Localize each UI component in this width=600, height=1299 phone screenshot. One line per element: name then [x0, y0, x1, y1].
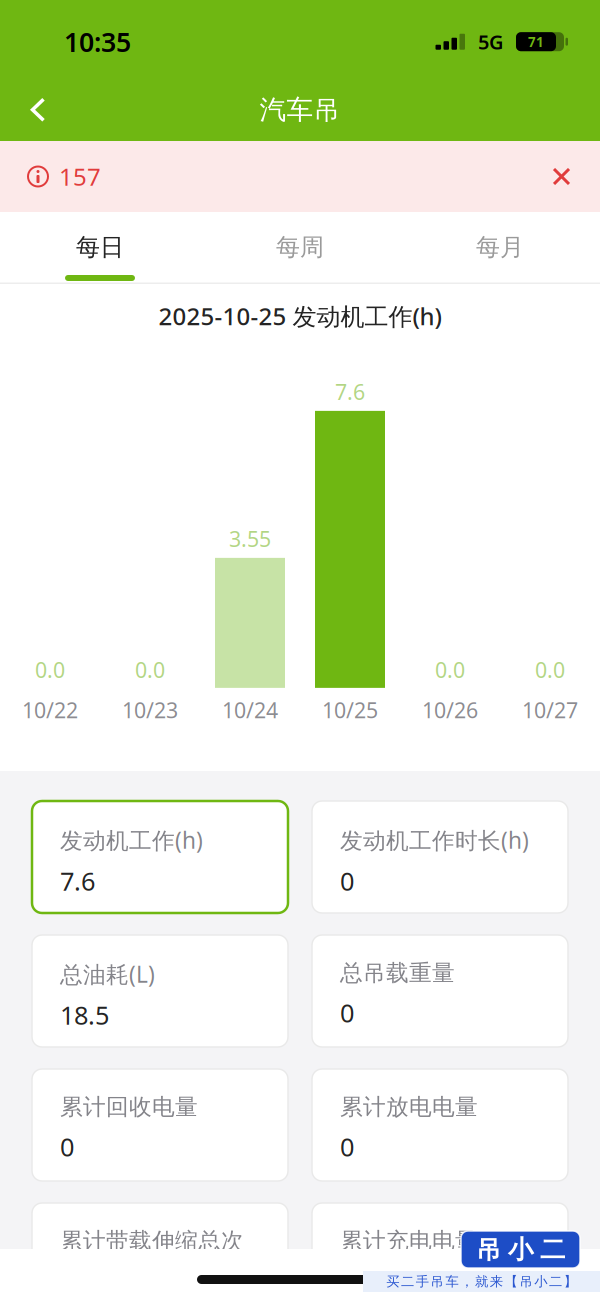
staticText: 0.0: [135, 655, 165, 684]
button[interactable]: 累计带载伸缩总次: [32, 1203, 288, 1299]
staticText: 10/24: [222, 696, 278, 724]
staticText: 0: [340, 864, 354, 898]
button[interactable]: Back: [31, 98, 45, 122]
staticText: 71: [528, 33, 544, 51]
staticText: 10:35: [64, 24, 131, 59]
staticText: 累计放电电量: [340, 1093, 478, 1121]
staticText: 10/27: [522, 696, 578, 724]
staticText: 0: [340, 1264, 354, 1297]
staticText: 发动机工作时长(h): [340, 825, 529, 855]
staticText: 吊小二: [476, 1234, 565, 1265]
staticText: 0.0: [435, 655, 465, 684]
staticText: 0.0: [35, 655, 65, 684]
staticText: 10/23: [122, 696, 178, 724]
staticText: 3.55: [229, 524, 271, 553]
button[interactable]: 发动机工作时长(h): [312, 801, 568, 913]
button[interactable]: 每日: [0, 212, 200, 282]
button[interactable]: 累计充电电量: [312, 1203, 568, 1299]
staticText: 累计充电电量: [340, 1227, 478, 1255]
staticText: 18.5: [60, 998, 109, 1032]
staticText: 发动机工作(h): [60, 825, 203, 855]
button[interactable]: 累计回收电量: [32, 1069, 288, 1181]
button[interactable]: 发动机工作(h): [32, 801, 288, 913]
staticText: 0.0: [535, 655, 565, 684]
staticText: 2025-10-25 发动机工作(h): [158, 300, 441, 332]
button[interactable]: 每月: [400, 212, 600, 282]
button[interactable]: 总吊载重量: [312, 935, 568, 1047]
staticText: 7.6: [60, 864, 95, 898]
staticText: 每周: [276, 232, 324, 262]
staticText: 总油耗(L): [60, 959, 155, 989]
button[interactable]: 总油耗(L): [32, 935, 288, 1047]
button[interactable]: Close: [553, 168, 570, 185]
staticText: 每日: [76, 232, 124, 262]
staticText: 10/25: [322, 696, 378, 724]
staticText: 每月: [476, 232, 524, 262]
staticText: 汽车吊: [259, 93, 340, 126]
button[interactable]: 每周: [200, 212, 400, 282]
staticText: 10/22: [22, 696, 78, 724]
staticText: 7.6: [335, 377, 365, 406]
staticText: 总吊载重量: [340, 959, 455, 987]
staticText: 0: [60, 1130, 74, 1163]
staticText: 累计回收电量: [60, 1093, 198, 1121]
staticText: 10/26: [422, 696, 478, 724]
staticText: 0: [340, 996, 354, 1029]
button[interactable]: 累计放电电量: [312, 1069, 568, 1181]
staticText: 157: [59, 161, 101, 192]
staticText: 买二手吊车，就来【吊小二】: [386, 1273, 577, 1290]
staticText: 5G: [478, 28, 504, 55]
staticText: 累计带载伸缩总次: [60, 1227, 244, 1255]
staticText: 0: [340, 1130, 354, 1163]
